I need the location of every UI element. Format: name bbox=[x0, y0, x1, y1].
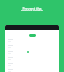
staticText: dangerous elements bbox=[21, 9, 43, 12]
staticText: Prevent the bbox=[22, 6, 42, 10]
button[interactable]: Scan bbox=[29, 34, 36, 37]
